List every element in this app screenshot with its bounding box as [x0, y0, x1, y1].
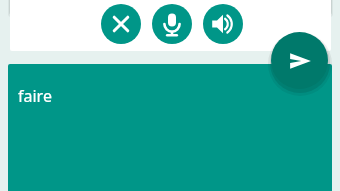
button[interactable]: Play audio: [203, 4, 243, 44]
button[interactable]: Close: [101, 4, 141, 44]
staticText: faire: [18, 85, 52, 107]
button[interactable]: Send: [271, 32, 328, 89]
button[interactable]: Microphone: [152, 4, 192, 44]
